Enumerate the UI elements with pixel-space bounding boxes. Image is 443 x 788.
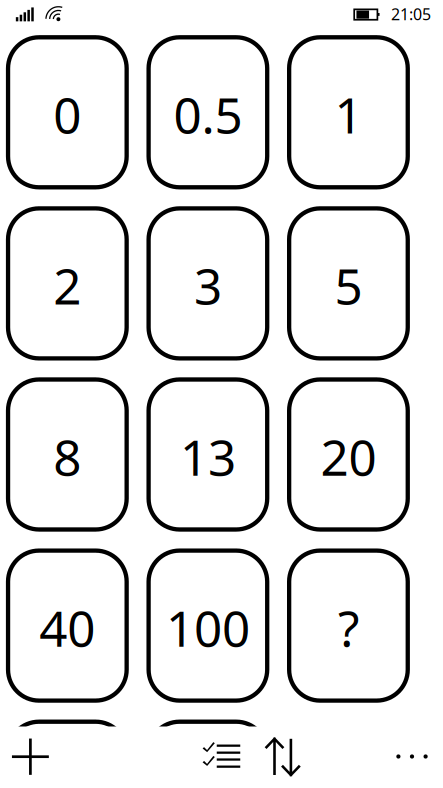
button[interactable]: Card sets bbox=[195, 724, 249, 786]
staticText: 5 bbox=[334, 253, 362, 318]
staticText: 20 bbox=[320, 424, 376, 489]
button[interactable]: 0.5 bbox=[149, 37, 267, 187]
staticText: 0 bbox=[53, 81, 81, 147]
button[interactable]: Sort cards bbox=[256, 726, 310, 788]
button[interactable]: 3 bbox=[149, 208, 267, 358]
staticText: 2 bbox=[53, 253, 81, 318]
button[interactable]: 1 bbox=[289, 37, 408, 187]
staticText: 40 bbox=[39, 595, 95, 660]
button[interactable]: 20 bbox=[289, 379, 408, 529]
staticText: 100 bbox=[166, 595, 250, 660]
staticText: 8 bbox=[53, 424, 81, 489]
staticText: 13 bbox=[180, 424, 236, 489]
staticText: ? bbox=[338, 595, 359, 660]
button[interactable]: 0 bbox=[8, 37, 127, 187]
staticText: 21:05 bbox=[391, 3, 431, 25]
staticText: 0.5 bbox=[173, 81, 242, 147]
button[interactable]: 8 bbox=[8, 379, 127, 529]
staticText: 1 bbox=[334, 81, 362, 147]
button[interactable]: 40 bbox=[8, 551, 127, 701]
button[interactable]: 5 bbox=[289, 208, 408, 358]
staticText: 3 bbox=[194, 253, 222, 318]
button[interactable]: 13 bbox=[149, 379, 267, 529]
button[interactable]: 100 bbox=[149, 551, 267, 701]
button[interactable]: Add card bbox=[0, 726, 61, 788]
button[interactable]: ? bbox=[289, 551, 408, 701]
button[interactable]: More options bbox=[381, 726, 443, 788]
button[interactable]: 2 bbox=[8, 208, 127, 358]
button[interactable] bbox=[8, 722, 127, 788]
button[interactable] bbox=[149, 722, 267, 788]
